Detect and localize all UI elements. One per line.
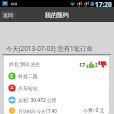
button[interactable]: 返回 [1,11,16,19]
staticText: 17:20 [95,0,112,7]
other: Rating up [86,60,95,69]
staticText: 姓名:测试 先生 [9,61,41,68]
staticText: 我的预约 [45,11,69,18]
other: Rating down [98,60,107,69]
staticText: 全程: 30.472 公里 [18,97,57,104]
staticText: 17 [79,61,86,68]
button[interactable]: 姓名:测试 先生 [4,56,109,114]
staticText: 小费: 0 元 [83,107,105,114]
staticText: 科技二路 [18,73,38,79]
other: Download [69,1,76,7]
staticText: 今天(2013-07-03) 您有1笔订单 [6,44,93,53]
staticText: 2 [95,62,98,68]
staticText: 返回 [3,12,14,18]
staticText: 火车站站 [18,85,38,91]
staticText: 启动时间 今天17:40 [18,108,57,114]
